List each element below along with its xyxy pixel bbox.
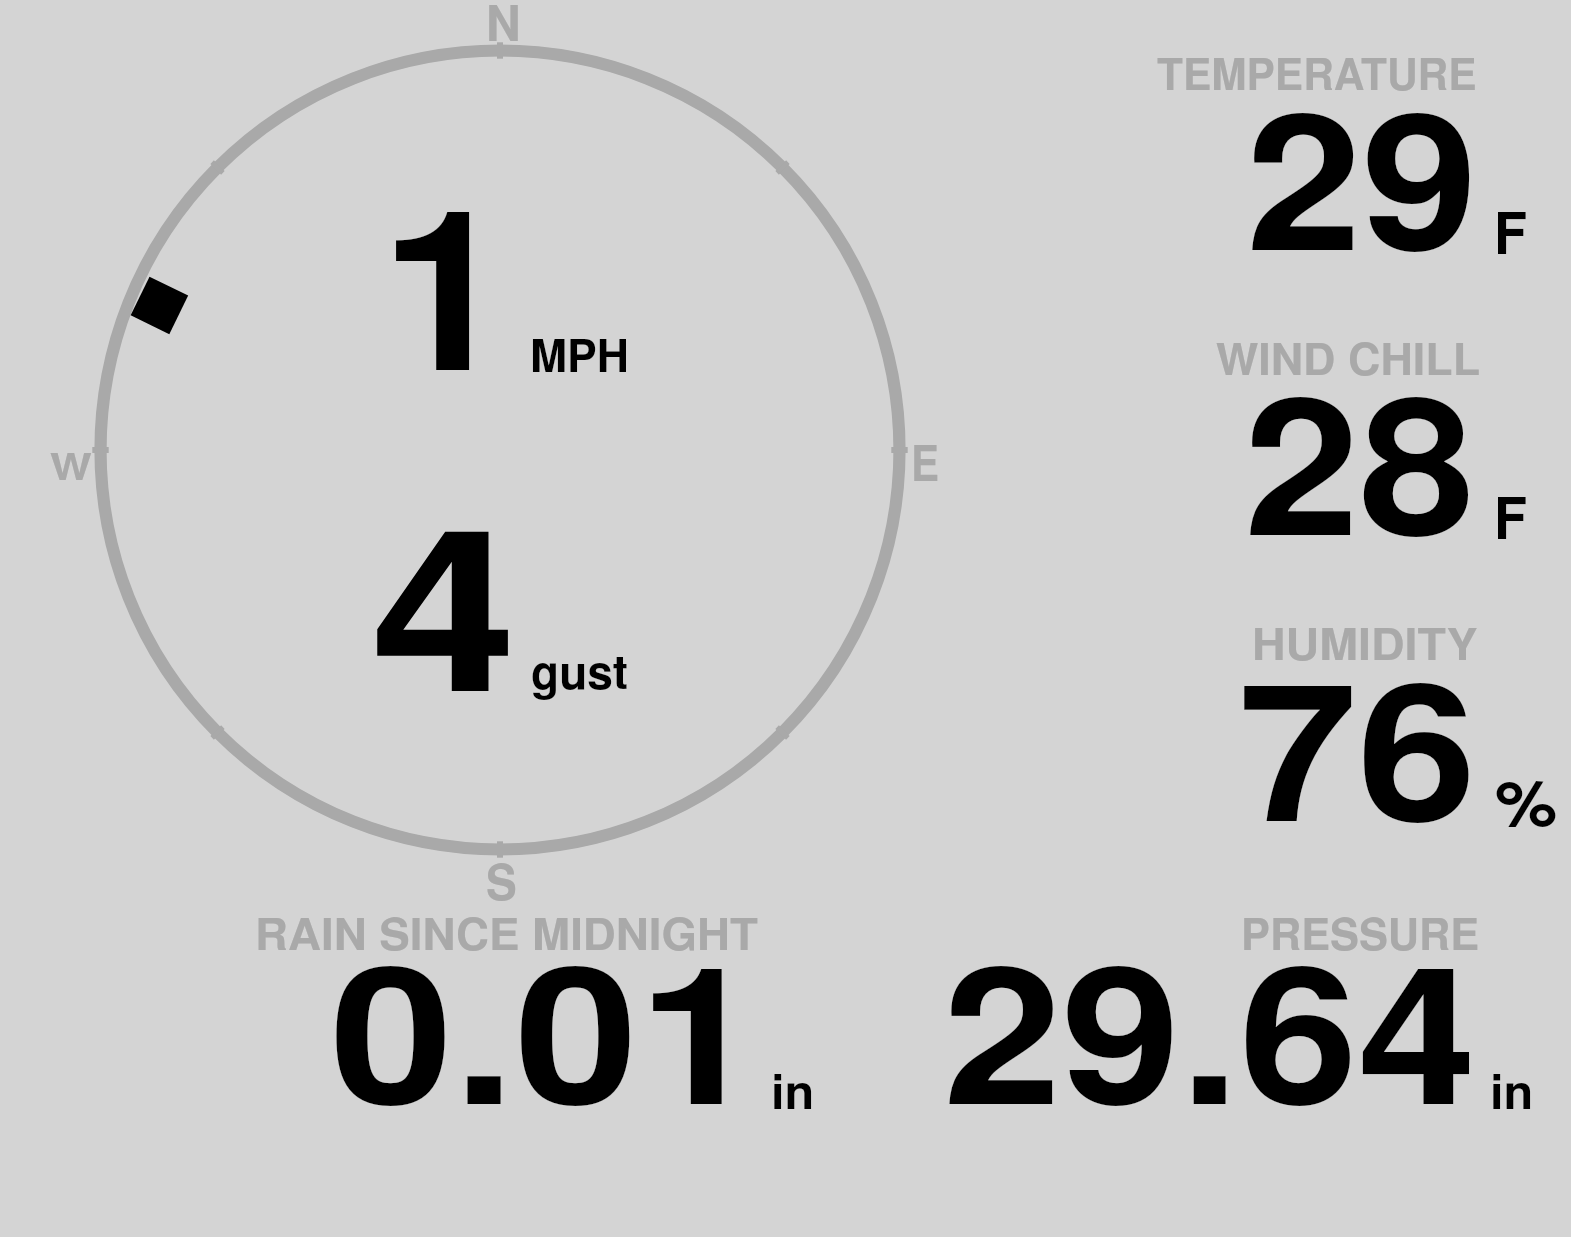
staticText: gust xyxy=(531,637,629,704)
button[interactable]: Temperature 29 degrees Fahrenheit xyxy=(950,40,1530,270)
staticText: PRESSURE xyxy=(1241,901,1480,963)
staticText: in xyxy=(771,1057,815,1123)
button[interactable]: Wind direction compass xyxy=(94,44,906,856)
staticText: E xyxy=(911,425,940,496)
staticText: F xyxy=(1494,190,1527,272)
button[interactable]: Rain since midnight 0.01 inches xyxy=(200,900,840,1130)
staticText: in xyxy=(1490,1057,1534,1123)
staticText: 4 xyxy=(371,438,517,759)
staticText: F xyxy=(1494,475,1527,557)
staticText: 29.64 xyxy=(943,890,1477,1163)
staticText: HUMIDITY xyxy=(1252,611,1478,673)
staticText: TEMPERATURE xyxy=(1157,41,1477,103)
staticText: W xyxy=(50,438,93,491)
staticText: S xyxy=(486,845,517,915)
button[interactable]: Wind speed 1 MPH xyxy=(330,180,660,400)
staticText: 28 xyxy=(1244,321,1475,594)
staticText: N xyxy=(486,0,521,56)
button[interactable]: Wind gust 4 MPH xyxy=(330,500,660,720)
button[interactable]: Humidity 76 percent xyxy=(950,610,1530,840)
staticText: % xyxy=(1495,755,1558,844)
staticText: 76 xyxy=(1238,607,1477,879)
staticText: 29 xyxy=(1246,37,1477,309)
staticText: RAIN SINCE MIDNIGHT xyxy=(255,901,758,963)
staticText: 0.01 xyxy=(330,890,762,1162)
staticText: 1 xyxy=(380,120,511,439)
button[interactable]: Pressure 29.64 inches xyxy=(900,900,1540,1130)
staticText: MPH xyxy=(530,321,629,385)
button[interactable]: Wind chill 28 degrees Fahrenheit xyxy=(950,325,1530,555)
staticText: WIND CHILL xyxy=(1216,326,1481,388)
